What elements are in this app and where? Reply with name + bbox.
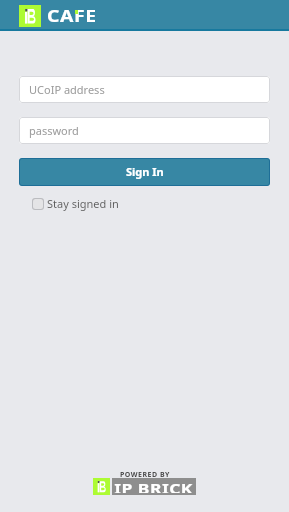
staticText: Stay signed in xyxy=(47,196,119,211)
staticText: POWERED BY xyxy=(120,470,170,480)
staticText: password xyxy=(29,123,79,138)
button[interactable]: UCoIP address xyxy=(19,76,270,103)
other: IPBrick logo xyxy=(19,5,41,27)
staticText: Sign In xyxy=(126,164,164,179)
staticText: UCoIP address xyxy=(29,82,105,97)
staticText: CAFE xyxy=(47,5,97,26)
button[interactable]: password xyxy=(19,117,270,144)
button[interactable]: Sign In xyxy=(19,158,270,186)
staticText: IP BRICK xyxy=(114,480,194,493)
button[interactable]: Stay signed in xyxy=(32,196,119,211)
